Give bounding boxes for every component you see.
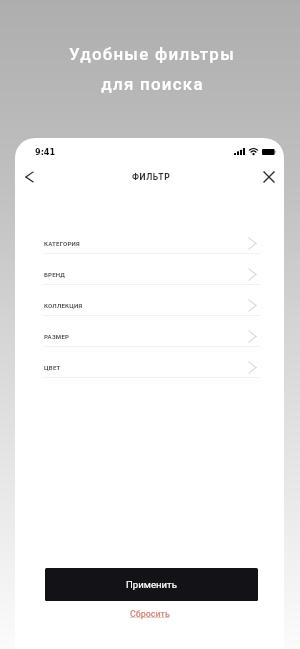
staticText: Удобные фильтры bbox=[69, 44, 235, 64]
staticText: ЦВЕТ bbox=[44, 364, 61, 371]
button[interactable]: БРЕНД bbox=[15, 254, 284, 285]
button[interactable]: КОЛЛЕКЦИЯ bbox=[15, 285, 284, 316]
button[interactable]: Применить bbox=[45, 568, 258, 601]
staticText: КАТЕГОРИЯ bbox=[44, 240, 80, 247]
staticText: РАЗМЕР bbox=[44, 333, 70, 340]
staticText: ФИЛЬТР bbox=[132, 172, 171, 182]
button[interactable]: РАЗМЕР bbox=[15, 316, 284, 347]
button[interactable]: Back bbox=[16, 163, 43, 190]
staticText: Сбросить bbox=[130, 609, 170, 619]
button[interactable]: Сбросить bbox=[130, 609, 170, 619]
button[interactable]: Close bbox=[255, 163, 282, 190]
button[interactable]: ЦВЕТ bbox=[15, 347, 284, 378]
staticText: для поиска bbox=[101, 74, 204, 94]
staticText: Применить bbox=[126, 579, 177, 590]
staticText: 9:41 bbox=[35, 147, 56, 156]
staticText: БРЕНД bbox=[44, 271, 66, 278]
button[interactable]: КАТЕГОРИЯ bbox=[15, 223, 284, 254]
staticText: КОЛЛЕКЦИЯ bbox=[44, 302, 83, 309]
